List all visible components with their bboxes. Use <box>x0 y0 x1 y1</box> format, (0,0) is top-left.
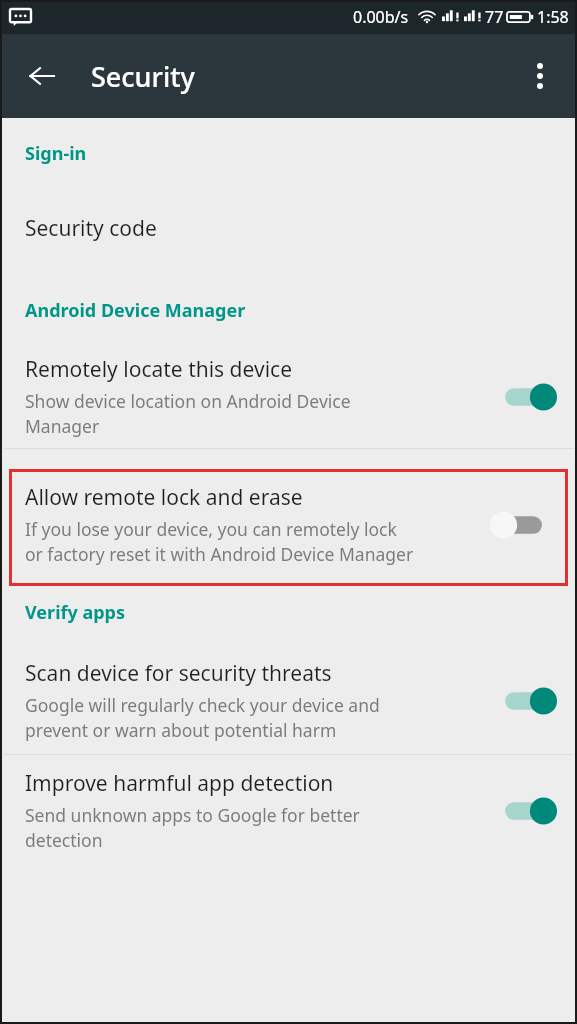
staticText: 0.00b/s <box>353 6 409 28</box>
staticText: Verify apps <box>25 600 126 625</box>
button[interactable]: Security code <box>0 200 577 256</box>
staticText: Show device location on Android Device M… <box>25 389 351 438</box>
staticText: 1:58 <box>537 6 569 28</box>
staticText: Remotely locate this device <box>25 355 292 384</box>
button[interactable]: On <box>497 377 559 417</box>
button[interactable]: On <box>497 681 559 721</box>
staticText: Improve harmful app detection <box>25 769 334 798</box>
button[interactable]: Scan device for security threats <box>0 659 577 742</box>
staticText: Security <box>91 58 195 95</box>
staticText: Sign-in <box>25 141 87 166</box>
staticText: Android Device Manager <box>25 298 246 323</box>
button[interactable]: On <box>497 791 559 831</box>
button[interactable]: Off <box>488 505 550 545</box>
staticText: Security code <box>25 214 157 243</box>
button[interactable]: More options <box>515 51 565 101</box>
button[interactable]: Allow remote lock and erase <box>9 469 568 586</box>
button[interactable]: Back <box>16 50 68 102</box>
staticText: Send unknown apps to Google for better d… <box>25 803 360 852</box>
staticText: Scan device for security threats <box>25 659 332 688</box>
button[interactable]: Remotely locate this device <box>0 355 577 438</box>
staticText: If you lose your device, you can remotel… <box>25 517 414 566</box>
button[interactable]: Improve harmful app detection <box>0 769 577 852</box>
staticText: Google will regularly check your device … <box>25 693 380 742</box>
staticText: 77 <box>485 6 504 28</box>
staticText: Allow remote lock and erase <box>25 483 303 512</box>
